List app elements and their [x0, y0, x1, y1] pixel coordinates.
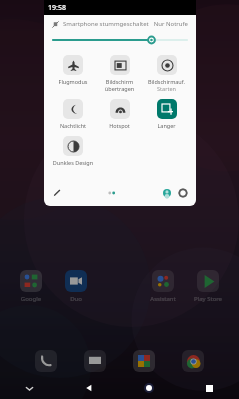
staticText: Play Store — [191, 295, 225, 303]
button[interactable]: Bearbeiten — [51, 187, 63, 199]
staticText: Smartphone stummgeschaltet — [63, 20, 149, 28]
staticText: Google — [14, 295, 48, 303]
staticText: Nur Notrufe — [153, 20, 188, 28]
button[interactable]: Chrome — [181, 349, 205, 373]
staticText: Flugmodus — [50, 78, 96, 85]
button[interactable]: Recents — [179, 377, 239, 399]
staticText: übertragen — [96, 85, 143, 92]
staticText: Langer Screenshot — [143, 122, 190, 129]
staticText: Duo — [59, 295, 93, 303]
button[interactable]: Photos — [132, 349, 156, 373]
staticText: Nachtlicht — [50, 122, 96, 129]
button[interactable]: Google — [14, 270, 48, 303]
staticText: Bildschirmauf. — [143, 78, 190, 85]
button[interactable]: Assistant — [146, 270, 180, 303]
button[interactable]: Duo — [59, 270, 93, 303]
button[interactable]: Einstellungen — [177, 187, 189, 199]
button[interactable]: Langer Screenshot — [143, 99, 190, 129]
button[interactable]: Back — [59, 377, 119, 399]
staticText: Assistant — [146, 295, 180, 303]
button[interactable]: Nutzer — [161, 187, 173, 199]
staticText: Bildschirm — [96, 78, 143, 85]
button[interactable]: Play Store — [191, 270, 225, 303]
button[interactable]: Flugmodus — [50, 55, 96, 85]
button[interactable]: Home — [119, 377, 179, 399]
button[interactable]: Phone — [34, 349, 58, 373]
staticText: Starten — [143, 85, 190, 92]
staticText: 19:58 — [48, 3, 66, 13]
staticText: Hotspot — [96, 122, 143, 129]
staticText: Dunkles Design — [50, 159, 96, 166]
button[interactable]: Helligkeit — [53, 34, 187, 46]
button[interactable]: Bildschirmauf. — [143, 55, 190, 92]
button[interactable]: Dunkles Design — [50, 136, 96, 166]
button[interactable]: Nachtlicht — [50, 99, 96, 129]
button[interactable]: Hotspot — [96, 99, 143, 129]
button[interactable]: Bildschirm — [96, 55, 143, 92]
button[interactable]: Messages — [83, 349, 107, 373]
button[interactable]: Dismiss — [0, 377, 59, 399]
